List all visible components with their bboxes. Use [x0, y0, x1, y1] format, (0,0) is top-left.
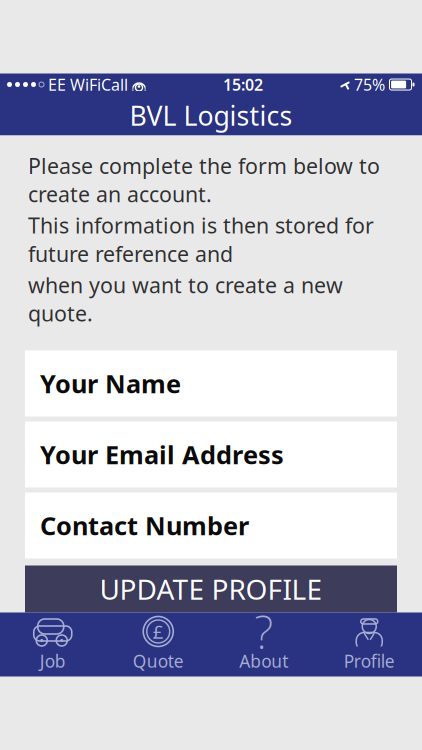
- button[interactable]: Profile: [316, 612, 422, 676]
- staticText: when you want to create a new quote.: [28, 271, 343, 327]
- staticText: BVL Logistics: [129, 98, 292, 133]
- button[interactable]: Contact Number: [25, 492, 397, 558]
- button[interactable]: Your Name: [25, 350, 397, 416]
- staticText: Quote: [133, 649, 184, 672]
- staticText: Contact Number: [40, 509, 249, 542]
- staticText: Job: [40, 649, 66, 672]
- staticText: UPDATE PROFILE: [99, 570, 322, 608]
- staticText: Your Name: [40, 367, 181, 400]
- staticText: ?: [254, 601, 273, 662]
- staticText: This information is then stored for futu…: [28, 211, 374, 268]
- staticText: 75%: [354, 74, 385, 95]
- staticText: Your Email Address: [40, 438, 284, 471]
- staticText: Profile: [344, 649, 395, 672]
- staticText: About: [239, 649, 288, 672]
- button[interactable]: £: [105, 612, 211, 676]
- staticText: £: [153, 619, 164, 644]
- button[interactable]: UPDATE PROFILE: [25, 565, 397, 612]
- button[interactable]: ?: [211, 612, 316, 676]
- button[interactable]: Job: [0, 612, 105, 676]
- button[interactable]: Your Email Address: [25, 421, 397, 487]
- staticText: EE WiFiCall: [48, 74, 128, 95]
- staticText: Please complete the form below to create…: [28, 151, 380, 208]
- staticText: 15:02: [223, 74, 263, 95]
